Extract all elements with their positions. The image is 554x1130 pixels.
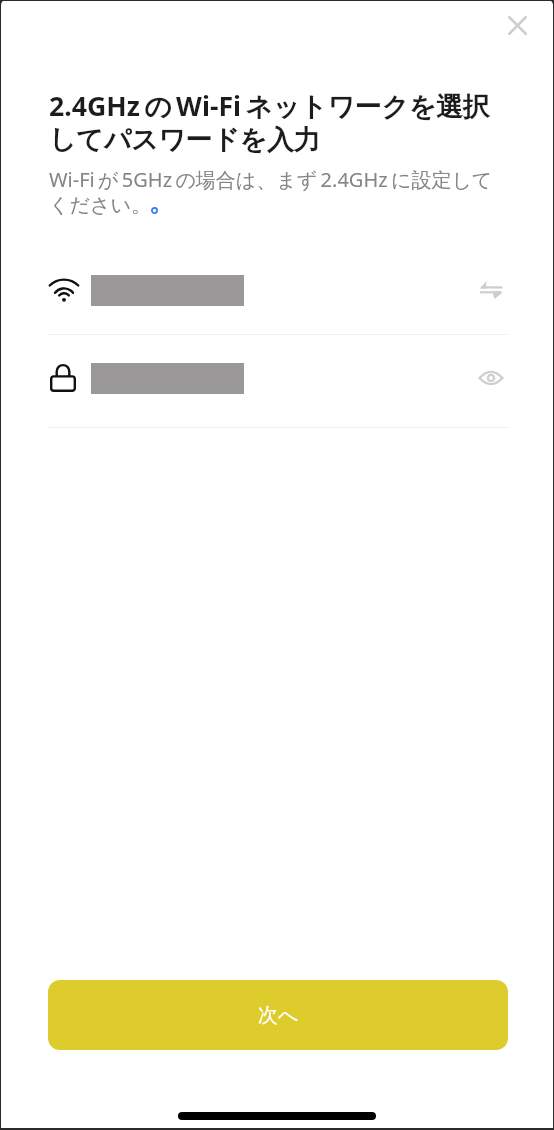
button[interactable]: Switch network bbox=[472, 271, 510, 309]
button[interactable]: Close bbox=[495, 3, 539, 47]
staticText: ください。 bbox=[49, 193, 151, 218]
button[interactable]: Wi-Fi password bbox=[48, 348, 468, 408]
staticText: Wi-Fi が 5GHz の場合は、まず 2.4GHz に設定して bbox=[49, 166, 493, 193]
button[interactable]: Show password bbox=[472, 359, 510, 397]
staticText: 次へ bbox=[258, 1003, 299, 1028]
staticText: 2.4GHz の Wi-Fi ネットワークを選択してパスワードを入力 bbox=[49, 87, 511, 157]
button[interactable]: Wi-Fi network name bbox=[48, 260, 468, 320]
button[interactable]: 次へ bbox=[48, 980, 508, 1050]
